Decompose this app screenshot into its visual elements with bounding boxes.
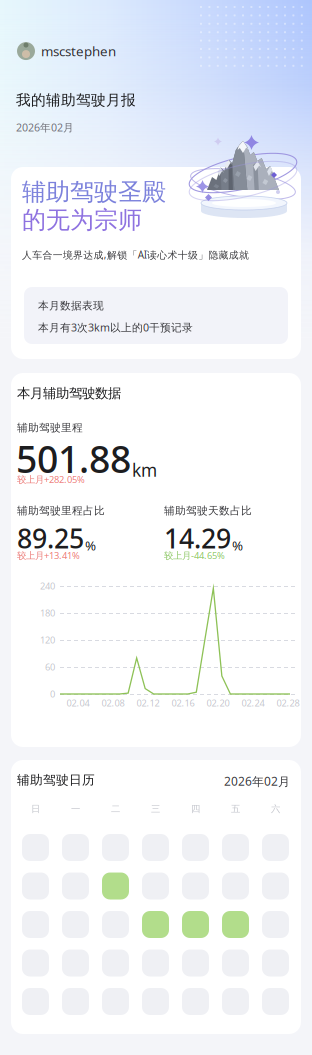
staticText: 02.04: [66, 697, 89, 709]
staticText: 60: [45, 661, 55, 673]
staticText: 辅助驾驶天数占比: [164, 504, 252, 517]
staticText: 14.29: [164, 520, 231, 556]
staticText: 240: [40, 580, 55, 592]
staticText: %: [85, 536, 96, 554]
staticText: 我的辅助驾驶月报: [16, 91, 136, 109]
staticText: 501.88: [16, 433, 131, 484]
staticText: 0: [50, 688, 55, 700]
staticText: 五: [231, 803, 240, 815]
staticText: 02.28: [276, 697, 299, 709]
staticText: 辅助驾驶圣殿: [22, 177, 166, 207]
staticText: 本月数据表现: [38, 299, 104, 312]
staticText: 的无为宗师: [22, 205, 142, 235]
staticText: 89.25: [17, 520, 84, 556]
staticText: km: [132, 458, 157, 482]
staticText: 四: [191, 803, 200, 815]
staticText: 日: [31, 803, 40, 815]
button[interactable]: mscstephen: [17, 42, 116, 60]
staticText: 02.16: [171, 697, 194, 709]
staticText: 120: [40, 634, 55, 646]
staticText: 180: [40, 607, 55, 619]
staticText: 较上月-44.65%: [164, 549, 225, 562]
staticText: 本月有3次3km以上的0干预记录: [38, 320, 193, 334]
staticText: 三: [151, 803, 160, 815]
staticText: %: [232, 536, 243, 554]
staticText: 较上月+13.41%: [17, 549, 80, 562]
staticText: 02.08: [101, 697, 124, 709]
staticText: 二: [111, 803, 120, 815]
staticText: 02.20: [206, 697, 229, 709]
staticText: 一: [71, 803, 80, 815]
staticText: 02.12: [136, 697, 159, 709]
staticText: 六: [271, 803, 280, 815]
staticText: 02.24: [241, 697, 264, 709]
staticText: 辅助驾驶里程占比: [17, 504, 105, 517]
staticText: 本月辅助驾驶数据: [17, 385, 121, 402]
staticText: 辅助驾驶日历: [17, 772, 95, 788]
staticText: mscstephen: [41, 42, 116, 60]
staticText: 2026年02月: [16, 120, 74, 134]
staticText: 2026年02月: [224, 773, 290, 789]
staticText: 辅助驾驶里程: [17, 421, 83, 434]
staticText: 人车合一境界达成,解锁「AI读心术十级」隐藏成就: [22, 248, 249, 261]
staticText: 较上月+282.05%: [17, 473, 85, 486]
